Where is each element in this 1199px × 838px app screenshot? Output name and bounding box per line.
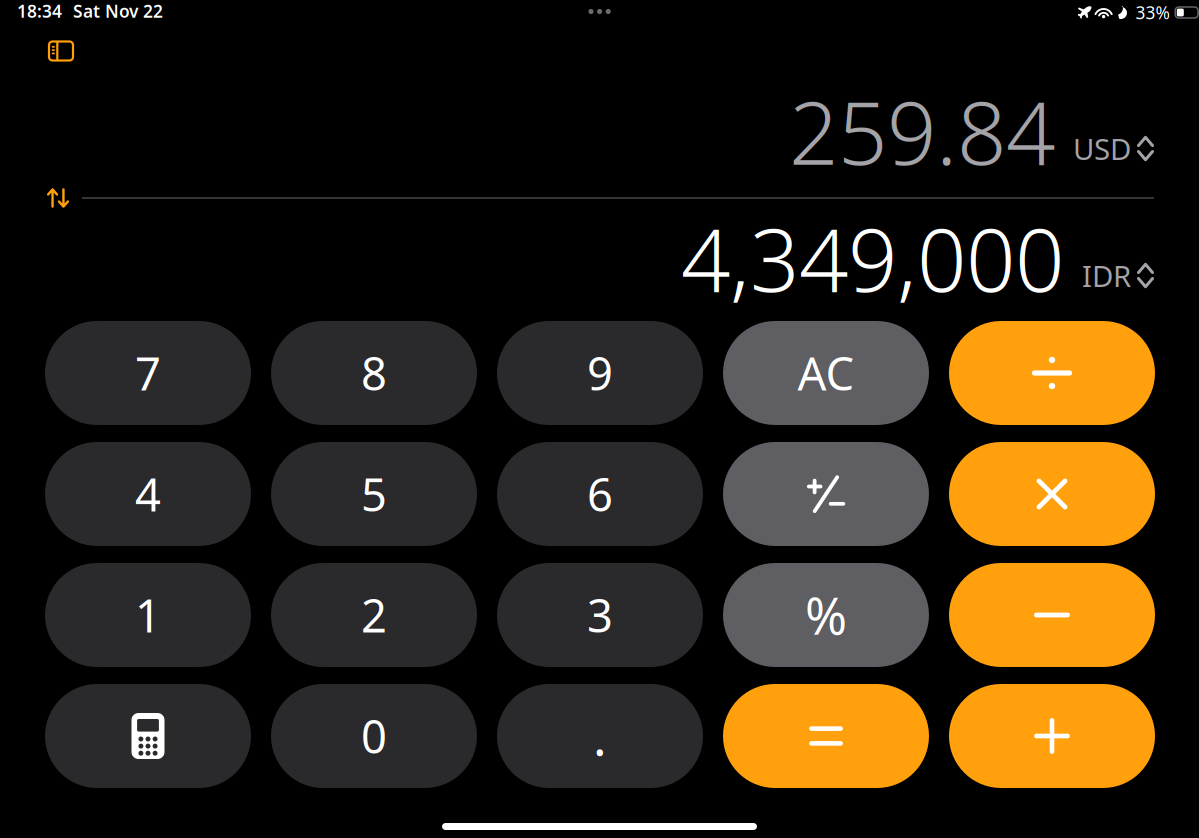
staticText: 5 xyxy=(361,464,387,524)
button[interactable]: 8 xyxy=(271,321,477,425)
button[interactable]: 1 xyxy=(45,563,251,667)
button[interactable]: 4 xyxy=(45,442,251,546)
button[interactable]: All clear xyxy=(723,321,929,425)
button[interactable]: Equals xyxy=(723,684,929,788)
staticText: AC xyxy=(797,343,854,403)
staticText: 6 xyxy=(587,464,613,524)
staticText: 4,349,000 xyxy=(681,200,1064,316)
button[interactable]: Add xyxy=(949,684,1155,788)
staticText: 33% xyxy=(1135,1,1169,24)
button[interactable]: 2 xyxy=(271,563,477,667)
button[interactable]: Calculator xyxy=(45,684,251,788)
button[interactable]: IDR xyxy=(1082,221,1154,295)
button[interactable]: . xyxy=(497,684,703,788)
staticText: 259.84 xyxy=(789,73,1055,189)
button[interactable]: Percent xyxy=(723,563,929,667)
button[interactable]: 7 xyxy=(45,321,251,425)
button[interactable]: 9 xyxy=(497,321,703,425)
staticText: IDR xyxy=(1082,256,1131,295)
staticText: . xyxy=(593,702,607,770)
staticText: 7 xyxy=(135,343,161,403)
staticText: 0 xyxy=(361,706,387,766)
staticText: 1 xyxy=(135,585,161,645)
button[interactable]: 0 xyxy=(271,684,477,788)
staticText: 2 xyxy=(361,585,387,645)
staticText: 4 xyxy=(135,464,161,524)
button[interactable]: Multiply xyxy=(949,442,1155,546)
button[interactable]: Plus minus xyxy=(723,442,929,546)
button[interactable]: USD xyxy=(1073,94,1154,168)
button[interactable]: Divide xyxy=(949,321,1155,425)
staticText: 9 xyxy=(587,343,613,403)
staticText: 3 xyxy=(587,585,613,645)
staticText: USD xyxy=(1073,129,1131,168)
button[interactable]: Show Sidebar xyxy=(41,33,81,69)
button[interactable]: 3 xyxy=(497,563,703,667)
button[interactable]: 6 xyxy=(497,442,703,546)
staticText: 18:34 xyxy=(17,0,62,22)
button[interactable]: Swap currencies xyxy=(43,183,73,213)
staticText: 8 xyxy=(361,343,387,403)
button[interactable]: Subtract xyxy=(949,563,1155,667)
staticText: % xyxy=(805,581,847,649)
button[interactable]: 5 xyxy=(271,442,477,546)
staticText: Sat Nov 22 xyxy=(73,0,163,22)
